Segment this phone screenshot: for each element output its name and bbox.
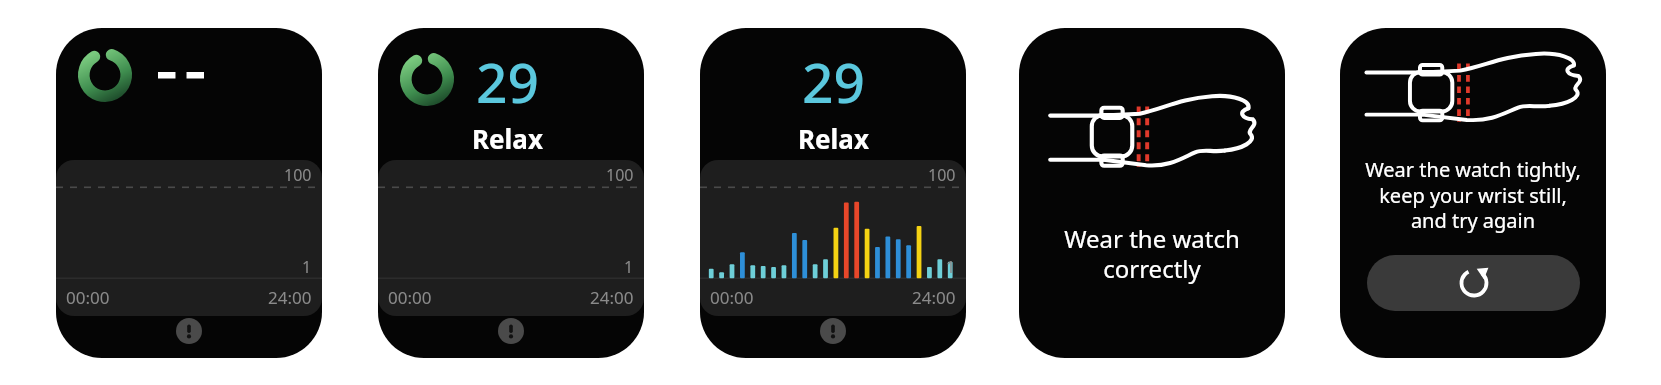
button[interactable]: Retry bbox=[1367, 255, 1580, 311]
staticText: 100 bbox=[928, 164, 956, 186]
staticText: 24:00 bbox=[912, 286, 956, 309]
staticText: 00:00 bbox=[388, 286, 432, 309]
staticText: Relax bbox=[472, 121, 543, 156]
staticText: 1 bbox=[302, 256, 312, 278]
staticText: 1 bbox=[624, 256, 634, 278]
staticText: 29 bbox=[802, 44, 865, 119]
staticText: 100 bbox=[284, 164, 312, 186]
staticText: 00:00 bbox=[66, 286, 110, 309]
staticText: Wear the watch tightly, keep your wrist … bbox=[1365, 156, 1581, 233]
staticText: Wear the watch correctly bbox=[1064, 222, 1240, 285]
staticText: 00:00 bbox=[710, 286, 754, 309]
staticText: 1 bbox=[946, 256, 956, 278]
staticText: 24:00 bbox=[590, 286, 634, 309]
button[interactable]: Warning bbox=[176, 318, 202, 344]
staticText: 24:00 bbox=[268, 286, 312, 309]
staticText: 100 bbox=[606, 164, 634, 186]
staticText: 29 bbox=[476, 44, 539, 119]
button[interactable]: Warning bbox=[498, 318, 524, 344]
staticText: Relax bbox=[798, 121, 869, 156]
button[interactable]: Warning bbox=[820, 318, 846, 344]
